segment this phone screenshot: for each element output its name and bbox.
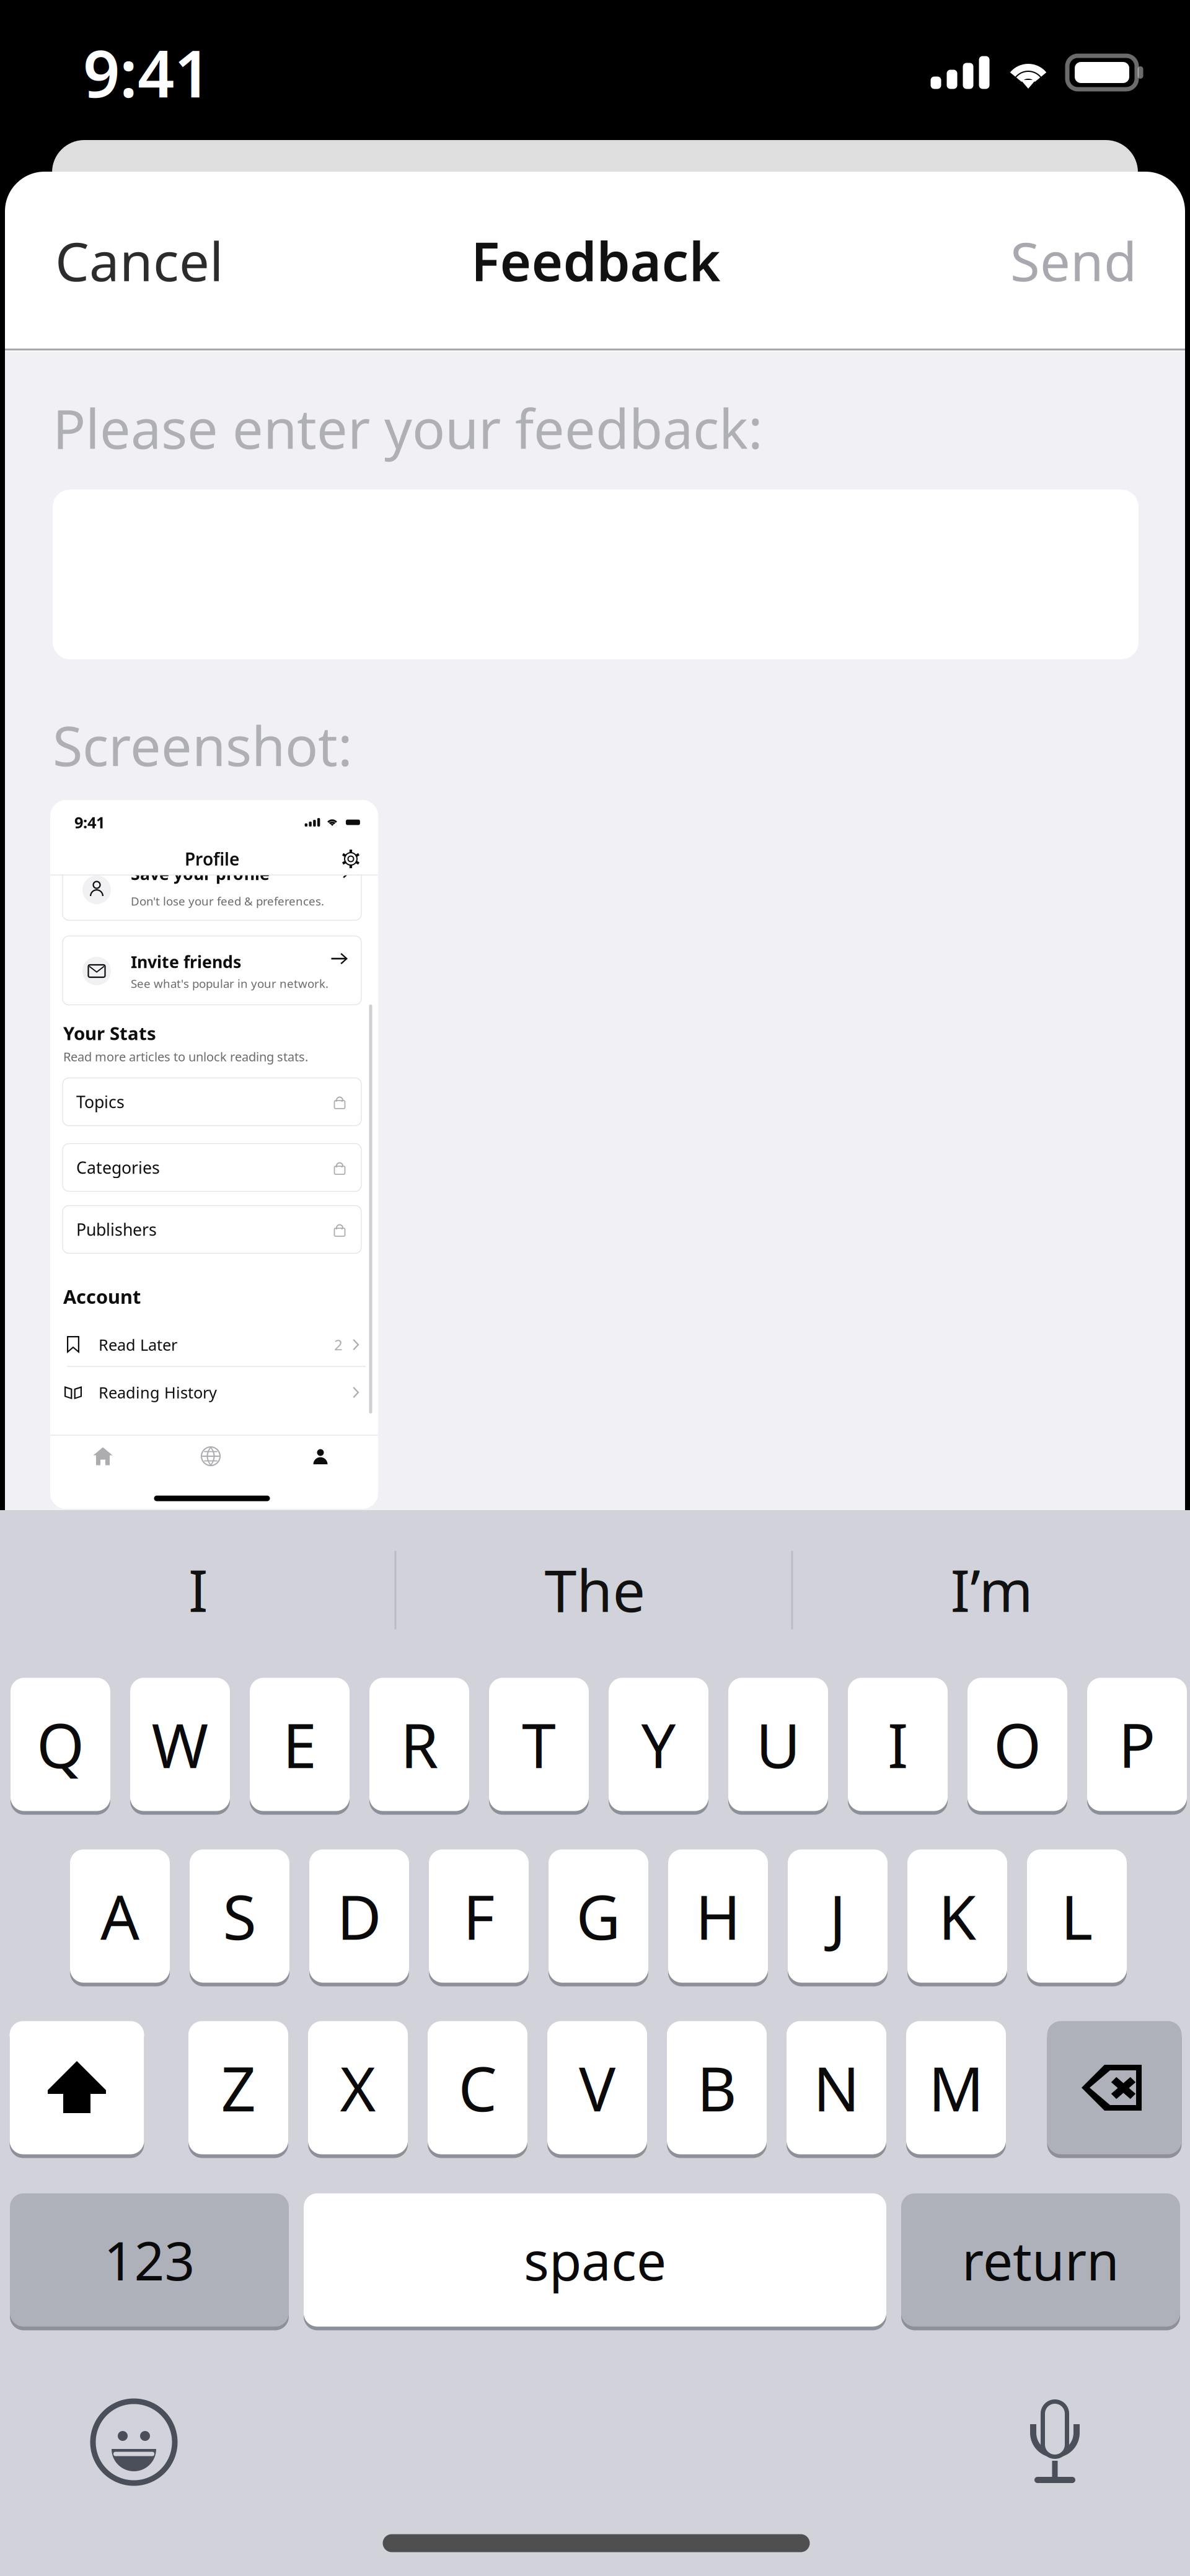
button[interactable]: 123 (10, 2191, 289, 2328)
staticText: W (152, 1704, 209, 1785)
button[interactable]: R (369, 1676, 469, 1813)
staticText: Categories (76, 1157, 160, 1178)
staticText: R (400, 1704, 438, 1785)
button[interactable]: Delete (1047, 2019, 1182, 2156)
staticText: 9:41 (83, 30, 211, 115)
button[interactable]: T (489, 1676, 589, 1813)
staticText: Read Later (99, 1334, 177, 1355)
staticText: V (579, 2047, 615, 2128)
staticText: Please enter your feedback: (53, 391, 763, 464)
button[interactable]: J (788, 1848, 888, 1985)
button[interactable]: I (848, 1676, 948, 1813)
staticText: K (938, 1875, 976, 1957)
staticText: Publishers (76, 1218, 157, 1240)
button[interactable]: A (70, 1848, 170, 1985)
staticText: H (695, 1875, 741, 1957)
staticText: Account (63, 1284, 141, 1309)
staticText: See what's popular in your network. (131, 976, 328, 991)
button[interactable]: Send (889, 204, 1137, 316)
button[interactable]: B (667, 2019, 767, 2156)
staticText: C (458, 2047, 497, 2128)
button[interactable]: L (1027, 1848, 1127, 1985)
button[interactable]: Shift (10, 2019, 144, 2156)
button[interactable]: C (428, 2019, 527, 2156)
staticText: Profile (185, 847, 239, 870)
staticText: D (337, 1875, 381, 1957)
staticText: U (756, 1704, 800, 1785)
staticText: The (544, 1551, 646, 1628)
staticText: return (962, 2225, 1119, 2295)
button[interactable]: Y (609, 1676, 708, 1813)
button[interactable]: O (967, 1676, 1067, 1813)
staticText: 9:41 (74, 812, 105, 833)
staticText: Reading History (99, 1382, 217, 1403)
staticText: Invite friends (131, 951, 241, 973)
staticText: P (1118, 1704, 1156, 1785)
staticText: G (576, 1875, 621, 1957)
staticText: Read more articles to unlock reading sta… (63, 1048, 308, 1065)
staticText: T (522, 1704, 556, 1785)
staticText: I (888, 1704, 908, 1785)
staticText: Cancel (55, 225, 223, 296)
staticText: Feedback (471, 225, 721, 296)
staticText: F (463, 1875, 495, 1957)
button[interactable]: K (907, 1848, 1007, 1985)
staticText: Save your profile (131, 863, 270, 885)
staticText: A (100, 1875, 139, 1957)
button[interactable]: X (308, 2019, 408, 2156)
staticText: I’m (950, 1551, 1033, 1628)
button[interactable]: P (1087, 1676, 1187, 1813)
button[interactable]: U (728, 1676, 828, 1813)
staticText: N (813, 2047, 860, 2128)
staticText: Y (641, 1704, 676, 1785)
button[interactable]: space (304, 2191, 886, 2328)
button[interactable]: E (250, 1676, 350, 1813)
button[interactable]: M (906, 2019, 1006, 2156)
staticText: M (928, 2047, 984, 2128)
staticText: Your Stats (63, 1021, 156, 1045)
staticText: space (524, 2225, 666, 2295)
staticText: Send (1010, 225, 1137, 296)
staticText: L (1061, 1875, 1093, 1957)
staticText: S (223, 1875, 256, 1957)
button[interactable]: Q (11, 1676, 110, 1813)
button[interactable]: V (547, 2019, 647, 2156)
staticText: Screenshot: (53, 709, 353, 781)
button[interactable]: W (130, 1676, 230, 1813)
staticText: Don't lose your feed & preferences. (131, 893, 324, 909)
button[interactable]: D (309, 1848, 409, 1985)
button[interactable]: Dictation (1025, 2398, 1085, 2486)
staticText: Topics (76, 1091, 125, 1113)
staticText: I (188, 1551, 208, 1628)
staticText: O (994, 1704, 1041, 1785)
staticText: 2 (334, 1335, 343, 1355)
button[interactable]: H (668, 1848, 768, 1985)
staticText: Z (221, 2047, 256, 2128)
staticText: B (697, 2047, 737, 2128)
button[interactable]: return (901, 2191, 1180, 2328)
button[interactable]: Emoji keyboard (93, 2401, 175, 2483)
staticText: 123 (104, 2225, 195, 2295)
button[interactable]: Cancel (55, 204, 303, 316)
staticText: X (340, 2047, 376, 2128)
button[interactable]: Z (188, 2019, 288, 2156)
staticText: Q (37, 1704, 84, 1785)
button[interactable]: N (787, 2019, 886, 2156)
staticText: E (283, 1704, 317, 1785)
button[interactable]: G (549, 1848, 648, 1985)
button[interactable]: F (429, 1848, 529, 1985)
button[interactable]: S (190, 1848, 289, 1985)
staticText: J (829, 1875, 846, 1957)
